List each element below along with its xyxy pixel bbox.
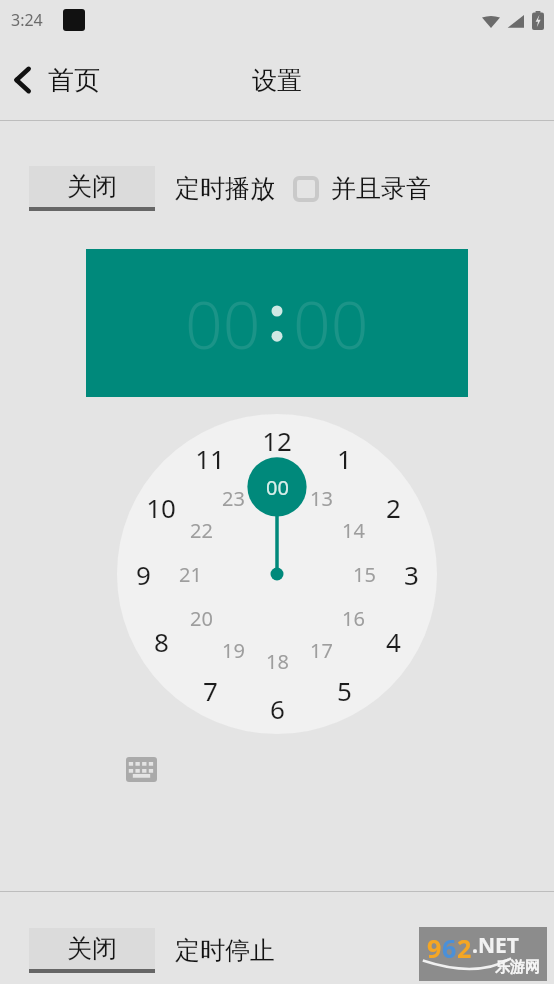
- staticText: 9: [136, 557, 151, 592]
- staticText: 7: [203, 673, 218, 708]
- button[interactable]: 00: [86, 249, 468, 397]
- staticText: 17: [310, 637, 333, 664]
- staticText: 乐游网: [495, 958, 540, 977]
- staticText: 14: [342, 517, 365, 544]
- staticText: 设置: [252, 65, 302, 96]
- staticText: 2: [457, 931, 472, 965]
- staticText: 3:24: [11, 9, 43, 31]
- staticText: 2: [386, 490, 401, 525]
- staticText: 00: [266, 474, 289, 501]
- staticText: 22: [190, 517, 213, 544]
- staticText: 10: [146, 490, 176, 525]
- staticText: 20: [190, 605, 213, 632]
- staticText: 23: [222, 485, 245, 512]
- staticText: 8: [154, 624, 169, 659]
- button[interactable]: [117, 414, 437, 734]
- staticText: 并且录音: [331, 173, 431, 204]
- staticText: 19: [222, 637, 245, 664]
- staticText: 1: [337, 441, 352, 476]
- staticText: 18: [266, 648, 289, 675]
- staticText: 首页: [48, 64, 100, 97]
- staticText: 11: [195, 441, 225, 476]
- button[interactable]: Switch to keyboard input: [126, 757, 157, 782]
- staticText: .NET: [472, 931, 519, 960]
- button[interactable]: 首页: [0, 63, 110, 97]
- button[interactable]: 关闭: [29, 166, 155, 211]
- staticText: 00: [185, 278, 261, 368]
- staticText: 6: [442, 931, 457, 965]
- staticText: 16: [342, 605, 365, 632]
- staticText: 3: [404, 557, 419, 592]
- staticText: 6: [270, 691, 285, 726]
- staticText: 00: [293, 278, 369, 368]
- button[interactable]: 并且录音: [293, 173, 431, 204]
- staticText: 9: [427, 931, 442, 965]
- staticText: 15: [353, 561, 376, 588]
- staticText: 5: [337, 673, 352, 708]
- staticText: 13: [310, 485, 333, 512]
- staticText: 4: [386, 624, 401, 659]
- staticText: 12: [262, 423, 292, 458]
- staticText: 21: [179, 561, 202, 588]
- staticText: 定时停止: [175, 935, 275, 966]
- staticText: 关闭: [67, 933, 117, 964]
- staticText: 关闭: [67, 171, 117, 202]
- button[interactable]: 关闭: [29, 928, 155, 973]
- staticText: 定时播放: [175, 173, 275, 204]
